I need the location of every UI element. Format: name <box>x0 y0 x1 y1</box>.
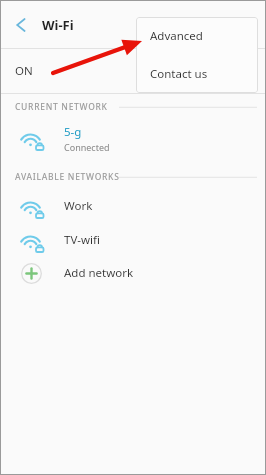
button[interactable]: Back <box>9 12 35 38</box>
staticText: Advanced <box>150 28 203 44</box>
staticText: Wi-Fi <box>42 16 74 34</box>
button[interactable]: TV-wifi <box>1 223 265 257</box>
button[interactable]: Contact us <box>136 55 258 93</box>
button[interactable]: ON <box>1 49 265 93</box>
staticText: Connected <box>64 141 110 153</box>
button[interactable]: Add network <box>1 256 265 290</box>
staticText: AVAILABLE NETWORKS <box>15 171 120 183</box>
staticText: ON <box>15 63 33 79</box>
button[interactable]: 5-g <box>1 121 265 155</box>
staticText: CURRENT NETWORK <box>15 101 108 113</box>
staticText: TV-wifi <box>64 232 100 248</box>
button[interactable]: Work <box>1 189 265 223</box>
button[interactable]: Advanced <box>136 17 258 55</box>
staticText: 5-g <box>64 124 82 140</box>
staticText: Add network <box>64 265 134 281</box>
staticText: Work <box>64 198 93 214</box>
staticText: Contact us <box>150 66 208 82</box>
